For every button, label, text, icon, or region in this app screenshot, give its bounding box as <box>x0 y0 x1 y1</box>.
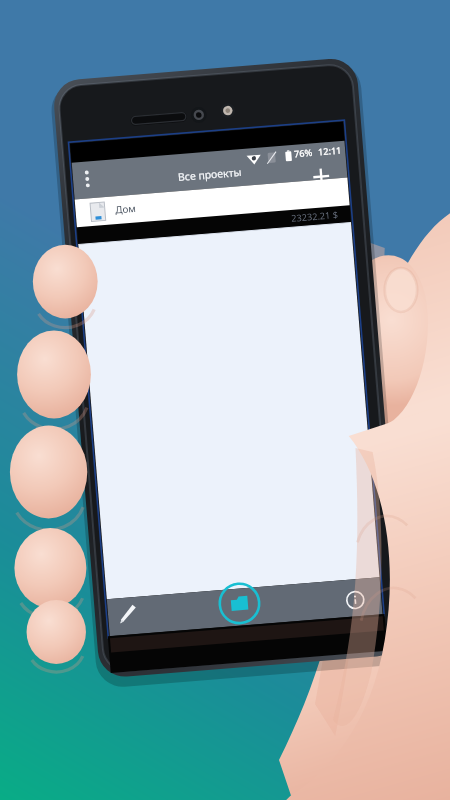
button[interactable]: Edit <box>58 595 98 629</box>
button[interactable]: Info <box>272 620 308 654</box>
button[interactable]: Projects <box>152 600 200 648</box>
button[interactable]: Add project <box>320 168 360 204</box>
button[interactable]: More options <box>110 150 136 190</box>
button[interactable] <box>98 185 348 215</box>
